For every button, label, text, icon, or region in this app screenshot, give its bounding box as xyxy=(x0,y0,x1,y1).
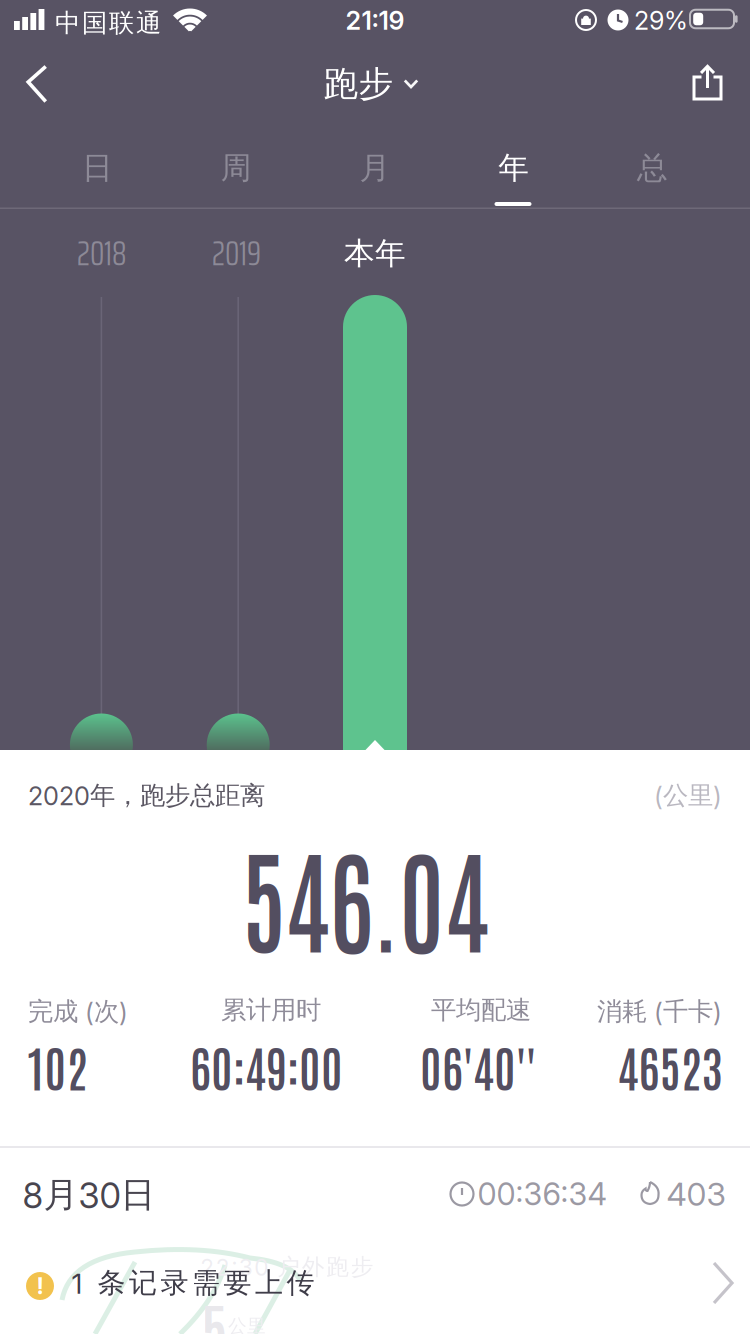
button[interactable]: Share xyxy=(682,55,732,110)
staticText: (公里) xyxy=(654,780,722,811)
staticText: 消耗 (千卡) xyxy=(597,996,722,1027)
staticText: ! xyxy=(36,1273,43,1299)
staticText: 60:49:00 xyxy=(190,1035,343,1097)
staticText: 22:30 户外跑步 xyxy=(200,1253,374,1281)
button[interactable]: 周 xyxy=(167,136,306,200)
button[interactable]: 日 xyxy=(28,136,167,200)
staticText: 102 xyxy=(26,1035,87,1097)
staticText: 周 xyxy=(221,149,252,187)
staticText: 日 xyxy=(82,149,113,187)
staticText: 46523 xyxy=(617,1035,722,1097)
staticText: 跑步 xyxy=(323,63,393,105)
button[interactable]: Back xyxy=(14,52,60,115)
staticText: 本年 xyxy=(344,235,406,272)
staticText: 1 条记录需要上传 xyxy=(71,1266,314,1300)
staticText: 5 xyxy=(200,1287,227,1334)
button[interactable]: 月 xyxy=(306,136,444,200)
staticText: 年 xyxy=(498,149,529,187)
staticText: 累计用时 xyxy=(221,994,321,1025)
staticText: 中国联通 xyxy=(55,7,161,38)
staticText: 总 xyxy=(637,149,668,187)
staticText: 21:19 xyxy=(345,6,404,35)
staticText: 06'40'' xyxy=(420,1035,536,1097)
staticText: 2020年，跑步总距离 xyxy=(28,780,265,811)
staticText: 平均配速 xyxy=(431,994,531,1025)
staticText: 2018 xyxy=(77,227,126,280)
staticText: 公里 xyxy=(228,1314,266,1334)
staticText: 00:36:34 xyxy=(477,1176,606,1212)
staticText: 完成 (次) xyxy=(28,996,128,1027)
button[interactable]: 总 xyxy=(583,136,722,200)
staticText: 403 xyxy=(666,1175,725,1213)
button[interactable]: 跑步 xyxy=(323,63,418,105)
button[interactable]: ! xyxy=(0,1230,750,1334)
staticText: 月 xyxy=(359,149,390,187)
staticText: 2019 xyxy=(212,227,261,280)
staticText: 29% xyxy=(634,6,688,35)
staticText: 546.04 xyxy=(227,822,503,968)
button[interactable]: 年 xyxy=(444,136,583,200)
staticText: 8月30日 xyxy=(22,1174,155,1216)
